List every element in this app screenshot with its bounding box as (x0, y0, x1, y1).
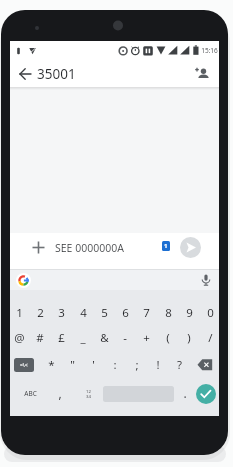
staticText: 9 (186, 305, 193, 321)
staticText: ! (156, 357, 160, 373)
button[interactable]: 9 (179, 303, 199, 323)
button[interactable]: 6 (115, 303, 135, 323)
button[interactable] (17, 65, 34, 82)
button[interactable]: 4 (73, 303, 93, 323)
staticText: , (58, 385, 62, 401)
staticText: ' (92, 357, 95, 373)
button[interactable] (200, 273, 212, 287)
button[interactable]: 12 34 (78, 386, 98, 401)
button[interactable]: _ (73, 328, 93, 348)
staticText: 3 (58, 305, 65, 321)
button[interactable]: / (200, 328, 220, 348)
staticText: * (48, 357, 55, 373)
staticText: : (113, 357, 117, 373)
button[interactable]: ? (169, 355, 189, 375)
staticText: + (143, 330, 150, 346)
staticText: 7 (143, 305, 150, 321)
button[interactable] (196, 384, 216, 404)
staticText: - (123, 330, 127, 346)
button[interactable]: 3 (51, 303, 71, 323)
staticText: 8 (165, 305, 172, 321)
button[interactable]: ' (83, 355, 103, 375)
staticText: " (70, 357, 75, 373)
button[interactable]: & (94, 328, 114, 348)
staticText: . (183, 385, 187, 401)
button[interactable]: 2 (30, 303, 50, 323)
button[interactable] (194, 67, 210, 81)
button[interactable] (180, 237, 201, 258)
staticText: 2 (37, 305, 44, 321)
button[interactable] (196, 357, 215, 372)
staticText: 6 (122, 305, 129, 321)
staticText: 15:16 (201, 46, 218, 55)
staticText: 1 (164, 242, 168, 250)
staticText: ; (135, 357, 139, 373)
button[interactable]: ; (127, 355, 147, 375)
button[interactable]: 8 (158, 303, 178, 323)
button[interactable]: ABC (20, 386, 41, 400)
staticText: =\< (20, 362, 28, 369)
staticText: & (100, 330, 109, 346)
staticText: 35001 (37, 65, 76, 83)
staticText: ? (177, 357, 182, 373)
button[interactable]: - (115, 328, 135, 348)
staticText: SEE 0000000A (55, 241, 124, 255)
staticText: / (208, 330, 213, 346)
button[interactable]: + (136, 328, 156, 348)
staticText: @ (14, 330, 25, 346)
staticText: _ (80, 330, 86, 346)
button[interactable]: 7 (136, 303, 156, 323)
button[interactable]: £ (51, 328, 71, 348)
button[interactable]: =\< (14, 358, 34, 372)
button[interactable]: 0 (200, 303, 220, 323)
button[interactable]: , (50, 383, 70, 403)
staticText: ( (166, 330, 170, 346)
button[interactable]: ( (158, 328, 178, 348)
staticText: £ (58, 330, 65, 346)
button[interactable]: " (62, 355, 82, 375)
staticText: ) (187, 330, 191, 346)
staticText: # (36, 330, 44, 346)
button[interactable]: . (175, 383, 195, 403)
button[interactable]: * (41, 355, 61, 375)
button[interactable]: @ (9, 328, 29, 348)
button[interactable]: ! (148, 355, 168, 375)
button[interactable]: 1 (9, 303, 29, 323)
staticText: 1 (16, 305, 23, 321)
staticText: 0 (207, 305, 214, 321)
staticText: 12 34 (86, 388, 91, 399)
button[interactable]: # (30, 328, 50, 348)
button[interactable] (16, 273, 31, 288)
staticText: 5 (101, 305, 108, 321)
button[interactable] (31, 240, 46, 255)
button[interactable]: ) (179, 328, 199, 348)
button[interactable]: 5 (94, 303, 114, 323)
staticText: ABC (24, 389, 37, 398)
staticText: 4 (80, 305, 87, 321)
button[interactable]: : (105, 355, 125, 375)
